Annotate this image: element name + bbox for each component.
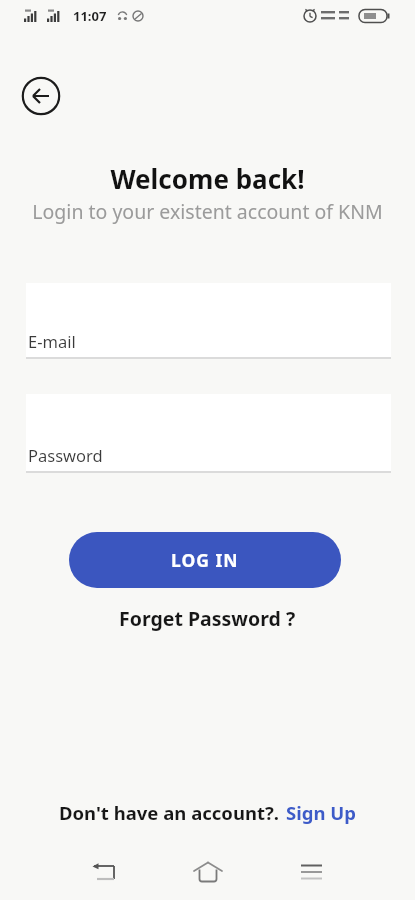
button[interactable] <box>172 844 244 900</box>
staticText: Don't have an account?. <box>59 800 279 825</box>
staticText: Forget Password ? <box>119 605 296 632</box>
button[interactable]: Password <box>26 394 391 473</box>
button[interactable] <box>21 76 61 116</box>
staticText: LOG IN <box>171 548 239 572</box>
staticText: E-mail <box>28 330 76 352</box>
button[interactable] <box>275 844 347 900</box>
button[interactable]: Forget Password ? <box>111 601 304 636</box>
staticText: Login to your existent account of KNM <box>0 198 415 225</box>
button[interactable]: LOG IN <box>69 532 341 588</box>
staticText: Password <box>28 444 103 466</box>
button[interactable] <box>68 844 140 900</box>
staticText: Sign Up <box>286 800 356 825</box>
button[interactable]: E-mail <box>26 283 391 359</box>
staticText: 11:07 <box>73 7 107 25</box>
staticText: Welcome back! <box>0 161 415 196</box>
button[interactable]: Sign Up <box>286 800 356 825</box>
